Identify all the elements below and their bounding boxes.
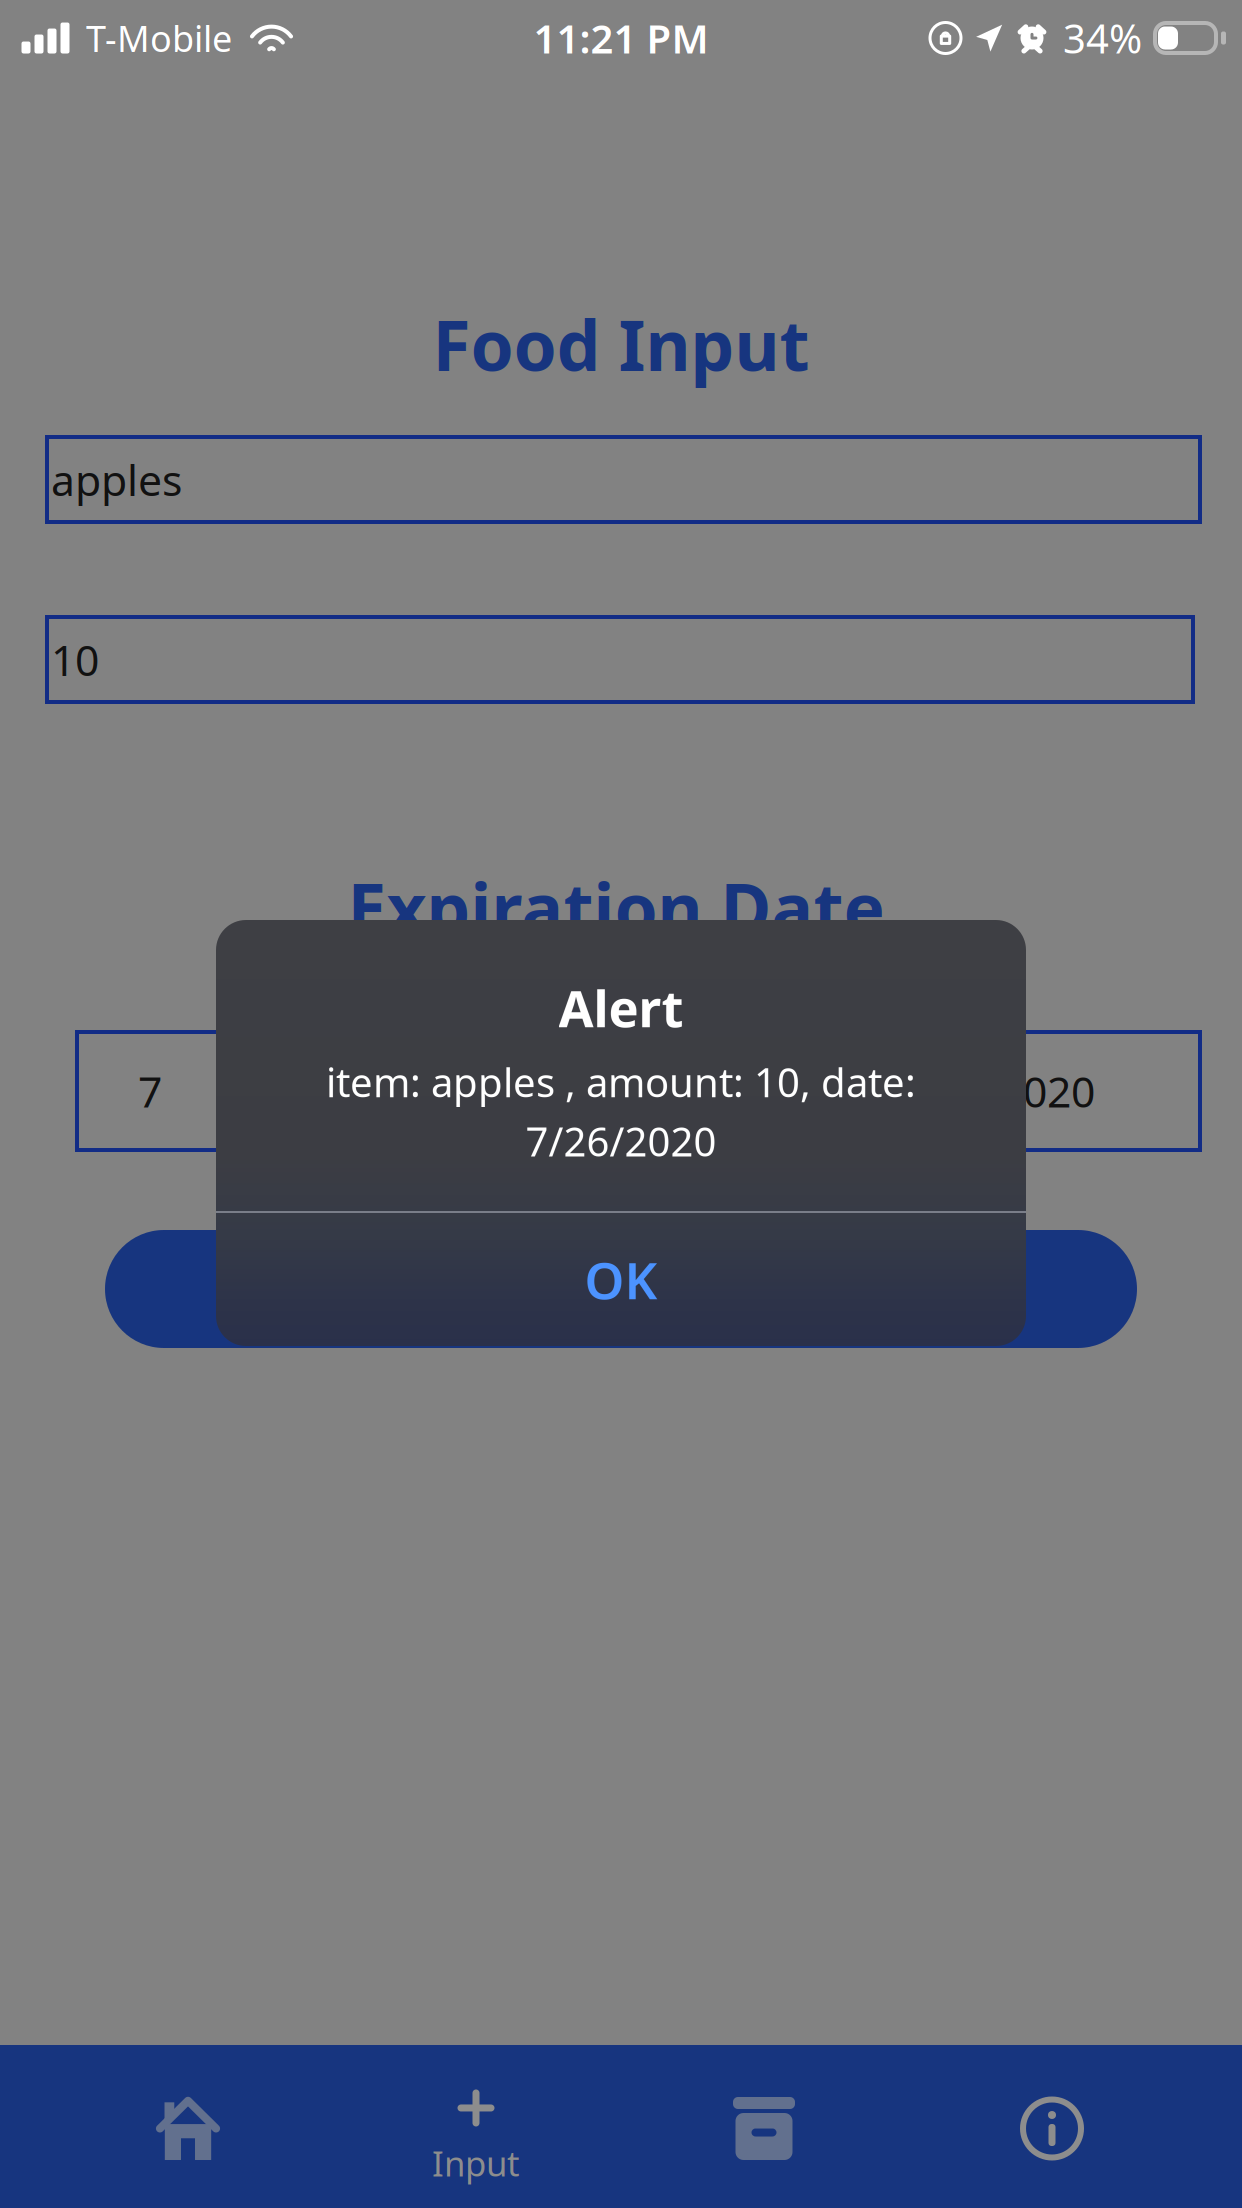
staticText: 34% — [1063, 11, 1142, 64]
staticText: T-Mobile — [86, 14, 232, 62]
staticText: Input — [432, 2140, 520, 2186]
button[interactable]: 10 — [45, 615, 1195, 704]
button[interactable]: apples — [45, 435, 1202, 524]
staticText: 7 — [138, 1063, 162, 1119]
button[interactable]: 26 — [225, 1030, 892, 1152]
staticText: 10 — [51, 631, 99, 688]
staticText: 7/26/2020 — [525, 1114, 716, 1167]
staticText: apples — [51, 451, 182, 508]
staticText: Submit — [542, 1259, 699, 1319]
button[interactable]: Submit — [105, 1230, 1137, 1348]
staticText: item: apples , amount: 10, date: — [326, 1055, 916, 1108]
button[interactable]: 2020 — [892, 1030, 1202, 1152]
staticText: 2020 — [999, 1063, 1095, 1119]
staticText: Expiration Date — [347, 861, 884, 953]
button[interactable]: Input — [332, 2045, 620, 2208]
staticText: 26 — [534, 1063, 582, 1119]
button[interactable]: Archive — [620, 2045, 908, 2208]
button[interactable]: Info — [908, 2045, 1196, 2208]
staticText: Food Input — [432, 298, 809, 390]
button[interactable]: 7 — [75, 1030, 225, 1152]
button[interactable]: OK — [216, 1213, 1026, 1346]
button[interactable]: Home — [44, 2045, 332, 2208]
staticText: 11:21 PM — [533, 11, 708, 64]
staticText: Alert — [558, 974, 683, 1041]
staticText: OK — [584, 1246, 657, 1313]
